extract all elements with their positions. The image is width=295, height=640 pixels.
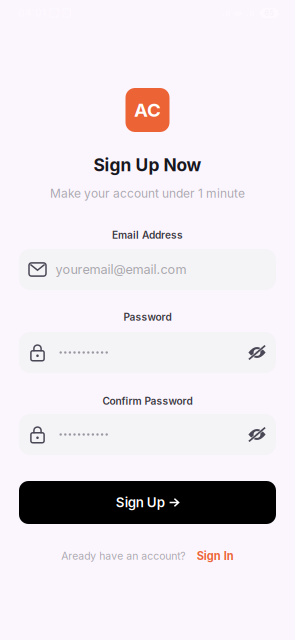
button[interactable]: Sign Up	[19, 481, 276, 524]
button[interactable]: Sign In	[197, 549, 234, 563]
staticText: Password	[123, 311, 171, 323]
staticText: Email Address	[112, 229, 183, 241]
staticText: Sign Up	[116, 494, 165, 510]
staticText: Confirm Password	[102, 395, 192, 407]
staticText: Sign Up Now	[93, 154, 201, 175]
staticText: Aready have an account?	[61, 550, 185, 562]
staticText: Make your account under 1 minute	[50, 186, 245, 201]
staticText: Sign In	[197, 549, 234, 563]
staticText: youremail@email.com	[55, 262, 186, 277]
staticText: AC	[134, 99, 161, 121]
